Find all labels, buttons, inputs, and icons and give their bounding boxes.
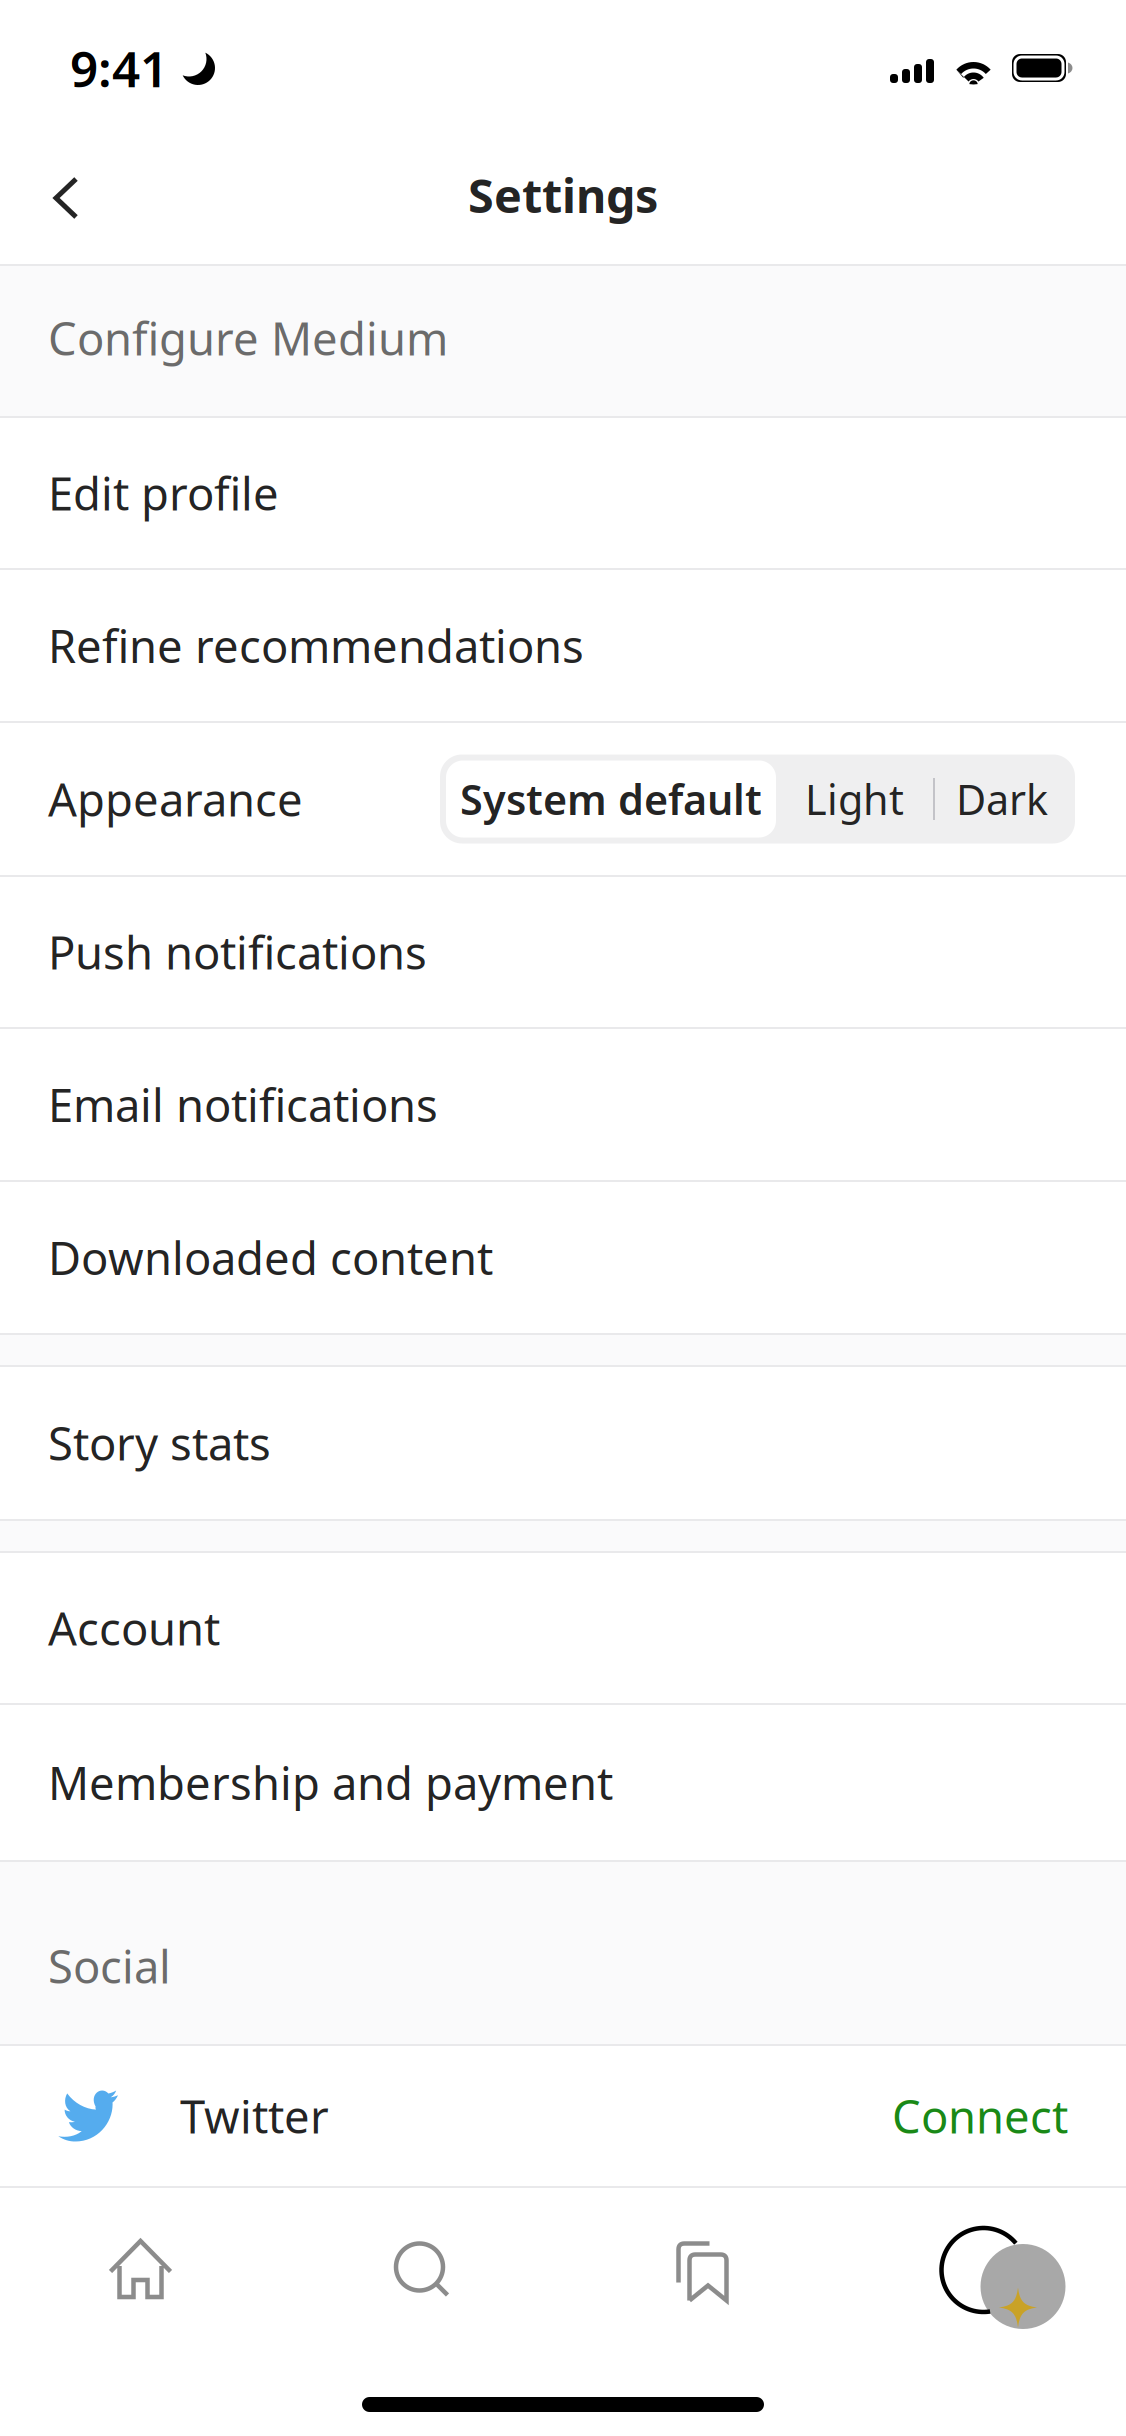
button[interactable]: Search (281, 2188, 562, 2395)
button[interactable]: Membership and payment (0, 1705, 1126, 1860)
button[interactable]: Account (0, 1553, 1126, 1703)
staticText: Social (48, 1936, 171, 1996)
button[interactable]: Email notifications (0, 1029, 1126, 1180)
staticText: Configure Medium (48, 308, 448, 368)
staticText: Settings (468, 164, 658, 226)
staticText: Account (48, 1598, 220, 1658)
staticText: Refine recommendations (48, 615, 584, 676)
staticText: Membership and payment (48, 1752, 613, 1813)
staticText: Connect (892, 2086, 1068, 2146)
button[interactable]: Back (0, 140, 110, 250)
button[interactable]: Push notifications (0, 877, 1126, 1027)
button[interactable]: Profile (843, 2192, 1126, 2391)
staticText: Push notifications (48, 922, 427, 982)
staticText: Downloaded content (48, 1227, 493, 1288)
button[interactable]: Story stats (0, 1367, 1126, 1519)
button[interactable]: Bookmarks (562, 2189, 843, 2393)
staticText: 9:41 (70, 35, 168, 101)
staticText: Light (805, 772, 904, 826)
button[interactable]: Light (776, 760, 933, 837)
staticText: Twitter (180, 2086, 329, 2146)
button[interactable]: System default (446, 760, 776, 837)
staticText: Email notifications (48, 1074, 438, 1135)
button[interactable]: Connect (884, 2072, 1076, 2160)
button[interactable]: Refine recommendations (0, 570, 1126, 721)
staticText: System default (460, 772, 762, 826)
staticText: Edit profile (48, 463, 279, 523)
staticText: Dark (956, 772, 1048, 826)
button[interactable]: Dark (935, 760, 1069, 837)
button[interactable]: Downloaded content (0, 1182, 1126, 1333)
button[interactable]: Home (0, 2192, 281, 2391)
button[interactable]: Edit profile (0, 418, 1126, 568)
staticText: Appearance (48, 769, 303, 829)
staticText: Story stats (48, 1413, 271, 1473)
